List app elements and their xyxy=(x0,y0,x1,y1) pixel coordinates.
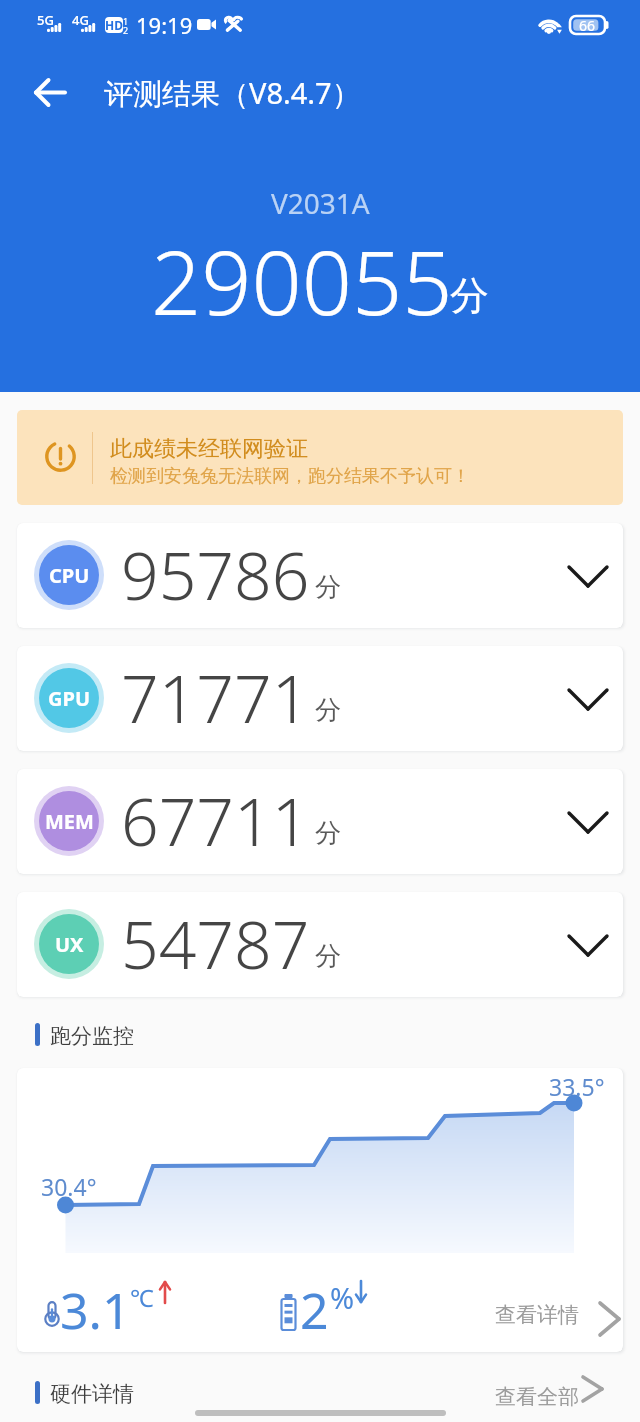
staticText: 19:19 xyxy=(136,10,193,40)
staticText: 分 xyxy=(315,694,341,727)
staticText: 5G xyxy=(37,11,54,29)
staticText: 30.4° xyxy=(41,1171,97,1202)
staticText: 检测到安兔兔无法联网，跑分结果不予认可！ xyxy=(110,465,470,488)
button[interactable]: GPU xyxy=(17,646,623,751)
staticText: HD xyxy=(105,17,123,33)
staticText: GPU xyxy=(48,685,91,712)
staticText: 1 xyxy=(123,15,129,27)
staticText: 3.1 xyxy=(60,1276,131,1344)
staticText: 评测结果（V8.4.7） xyxy=(104,73,361,113)
staticText: CPU xyxy=(49,562,90,589)
button[interactable]: 30.4° xyxy=(17,1068,623,1352)
staticText: 查看详情 xyxy=(495,1302,579,1328)
staticText: 33.5° xyxy=(549,1071,605,1102)
staticText: 分 xyxy=(450,271,489,320)
button[interactable]: Expand CPU xyxy=(558,546,618,606)
staticText: 跑分监控 xyxy=(50,1023,134,1049)
staticText: 66 xyxy=(579,16,596,34)
button[interactable]: Back xyxy=(22,64,78,120)
button[interactable]: UX xyxy=(17,892,623,997)
staticText: ℃ xyxy=(130,1281,154,1314)
staticText: 54787 xyxy=(121,898,310,988)
button[interactable]: Expand GPU xyxy=(558,669,618,729)
button[interactable]: 查看详情 xyxy=(483,1282,613,1340)
staticText: % xyxy=(330,1278,355,1317)
staticText: MEM xyxy=(45,808,94,835)
staticText: 95786 xyxy=(121,529,310,619)
staticText: 此成绩未经联网验证 xyxy=(110,435,308,463)
button[interactable]: 查看全部 xyxy=(466,1364,618,1390)
staticText: V2031A xyxy=(271,184,370,222)
staticText: 查看全部 xyxy=(495,1384,579,1410)
staticText: 71771 xyxy=(121,652,310,742)
button[interactable]: Expand MEM xyxy=(558,792,618,852)
staticText: 4G xyxy=(72,11,89,29)
staticText: 290055 xyxy=(151,221,453,341)
staticText: 分 xyxy=(315,940,341,973)
staticText: UX xyxy=(55,931,84,958)
button[interactable]: 此成绩未经联网验证 xyxy=(17,410,623,505)
button[interactable]: MEM xyxy=(17,769,623,874)
button[interactable]: Expand UX xyxy=(558,915,618,975)
staticText: 分 xyxy=(315,571,341,604)
staticText: 硬件详情 xyxy=(50,1381,134,1407)
button[interactable]: CPU xyxy=(17,523,623,628)
staticText: 2 xyxy=(123,24,129,36)
staticText: 2 xyxy=(300,1276,329,1344)
staticText: 分 xyxy=(315,817,341,850)
staticText: 67711 xyxy=(121,775,310,865)
